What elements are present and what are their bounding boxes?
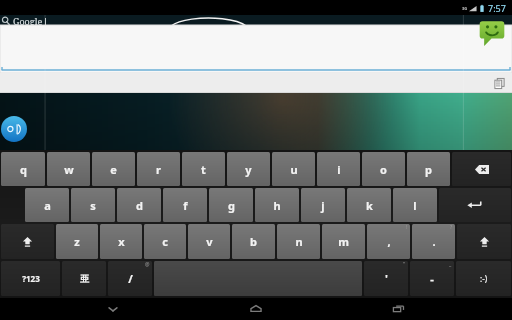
button[interactable]: s <box>71 188 115 222</box>
button[interactable]: 亜 <box>62 261 106 296</box>
button[interactable]: App shortcut <box>1 116 27 142</box>
staticText: " <box>403 261 406 268</box>
staticText: , <box>387 234 391 249</box>
button[interactable]: Messaging <box>478 19 506 47</box>
button[interactable]: n <box>277 224 320 259</box>
button[interactable]: t <box>182 152 225 186</box>
staticText: g <box>228 198 235 213</box>
staticText: 7:57 <box>488 2 506 14</box>
staticText: Google <box>13 15 43 25</box>
staticText: _ <box>449 261 452 268</box>
staticText: b <box>250 234 257 249</box>
staticText: q <box>20 162 27 177</box>
button[interactable]: f <box>163 188 207 222</box>
staticText: e <box>110 162 117 177</box>
staticText: p <box>425 162 432 177</box>
button[interactable]: g <box>209 188 253 222</box>
staticText: m <box>338 234 349 249</box>
staticText: j <box>321 198 325 213</box>
button[interactable]: ' <box>364 261 408 296</box>
button[interactable]: Paste from clipboard <box>491 75 507 91</box>
staticText: ' <box>385 271 388 286</box>
button[interactable]: e <box>92 152 135 186</box>
button[interactable]: ?123 <box>1 261 60 296</box>
button[interactable]: Shift <box>1 224 54 259</box>
staticText: ?123 <box>22 273 40 284</box>
button[interactable]: Shift <box>457 224 511 259</box>
button[interactable]: m <box>322 224 365 259</box>
button[interactable]: i <box>317 152 360 186</box>
staticText: 3G <box>462 6 468 11</box>
staticText: 亜 <box>80 273 89 284</box>
staticText: s <box>90 198 96 213</box>
staticText: d <box>136 198 143 213</box>
button[interactable]: - <box>410 261 454 296</box>
staticText: y <box>245 162 252 177</box>
button[interactable]: x <box>100 224 142 259</box>
staticText: @ <box>145 261 150 268</box>
button[interactable]: / <box>108 261 152 296</box>
button[interactable]: d <box>117 188 161 222</box>
button[interactable]: c <box>144 224 186 259</box>
staticText: ! <box>406 224 408 231</box>
staticText: f <box>183 198 188 213</box>
button[interactable]: Enter <box>439 188 511 222</box>
button[interactable]: h <box>255 188 299 222</box>
button[interactable]: Home <box>236 298 276 320</box>
button[interactable]: p <box>407 152 450 186</box>
staticText: . <box>432 234 436 249</box>
staticText: t <box>201 162 206 177</box>
staticText: l <box>413 198 417 213</box>
button[interactable]: u <box>272 152 315 186</box>
button[interactable]: q <box>1 152 45 186</box>
staticText: n <box>295 234 303 249</box>
staticText: o <box>380 162 387 177</box>
staticText: - <box>430 271 434 286</box>
button[interactable]: Space <box>154 261 362 296</box>
button[interactable]: Backspace <box>452 152 511 186</box>
button[interactable]: b <box>232 224 275 259</box>
staticText: a <box>44 198 51 213</box>
button[interactable]: o <box>362 152 405 186</box>
button[interactable]: a <box>25 188 69 222</box>
staticText: v <box>206 234 213 249</box>
staticText: z <box>74 234 80 249</box>
staticText: i <box>337 162 341 177</box>
button[interactable]: j <box>301 188 345 222</box>
button[interactable]: l <box>393 188 437 222</box>
button[interactable]: r <box>137 152 180 186</box>
staticText: ? <box>450 224 453 231</box>
button[interactable]: k <box>347 188 391 222</box>
staticText: :-) <box>480 273 488 284</box>
button[interactable]: . <box>412 224 455 259</box>
button[interactable]: Emoticon <box>456 261 511 296</box>
staticText: c <box>162 234 168 249</box>
staticText: r <box>156 162 161 177</box>
button[interactable]: y <box>227 152 270 186</box>
button[interactable]: z <box>56 224 98 259</box>
staticText: u <box>290 162 298 177</box>
button[interactable]: v <box>188 224 230 259</box>
staticText: | <box>43 15 48 25</box>
button[interactable]: Hide keyboard <box>93 298 133 320</box>
button[interactable]: w <box>47 152 90 186</box>
button[interactable]: Recent apps <box>379 298 419 320</box>
staticText: x <box>118 234 125 249</box>
staticText: / <box>128 271 133 286</box>
staticText: h <box>273 198 281 213</box>
staticText: w <box>64 162 74 177</box>
staticText: k <box>366 198 373 213</box>
button[interactable]: , <box>367 224 410 259</box>
